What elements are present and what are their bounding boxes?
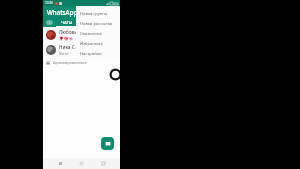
button[interactable]: Recents [99, 159, 108, 168]
staticText: Фото [59, 51, 69, 56]
button[interactable]: Избранные сообщения [80, 39, 118, 49]
button[interactable]: Новая рассылка [80, 19, 118, 29]
button[interactable]: Back [56, 159, 65, 168]
staticText: Любовь Ж [59, 29, 83, 35]
button[interactable]: Camera [87, 8, 96, 17]
button[interactable]: Search [98, 8, 107, 17]
staticText: Настройки [80, 51, 102, 57]
staticText: Связанные устройства [80, 31, 118, 37]
button[interactable]: Архивированные [43, 57, 120, 68]
button[interactable]: Настройки [80, 49, 118, 58]
button[interactable]: Camera tab [43, 18, 56, 27]
staticText: ЧАТЫ [61, 20, 73, 26]
button[interactable] [78, 18, 120, 27]
staticText: 🌹💖🌸 [59, 36, 74, 40]
button[interactable]: Новая группа [80, 9, 118, 19]
staticText: Новая группа [80, 11, 107, 17]
staticText: 13:21 [84, 30, 93, 34]
button[interactable]: Связанные устройства [80, 29, 118, 39]
button[interactable]: Ника С. [43, 42, 120, 57]
button[interactable]: New chat [101, 137, 114, 150]
staticText: Ника С. [59, 44, 76, 50]
staticText: 13:26 [45, 1, 54, 5]
staticText: Избранные сообщения [80, 41, 118, 47]
staticText: Новая рассылка [80, 21, 113, 27]
staticText: Архивированные [53, 60, 87, 65]
button[interactable]: ЧАТЫ [56, 18, 78, 27]
button[interactable]: Home [77, 159, 86, 168]
button[interactable]: Любовь Ж [43, 27, 120, 42]
staticText: WhatsApp [47, 8, 78, 16]
